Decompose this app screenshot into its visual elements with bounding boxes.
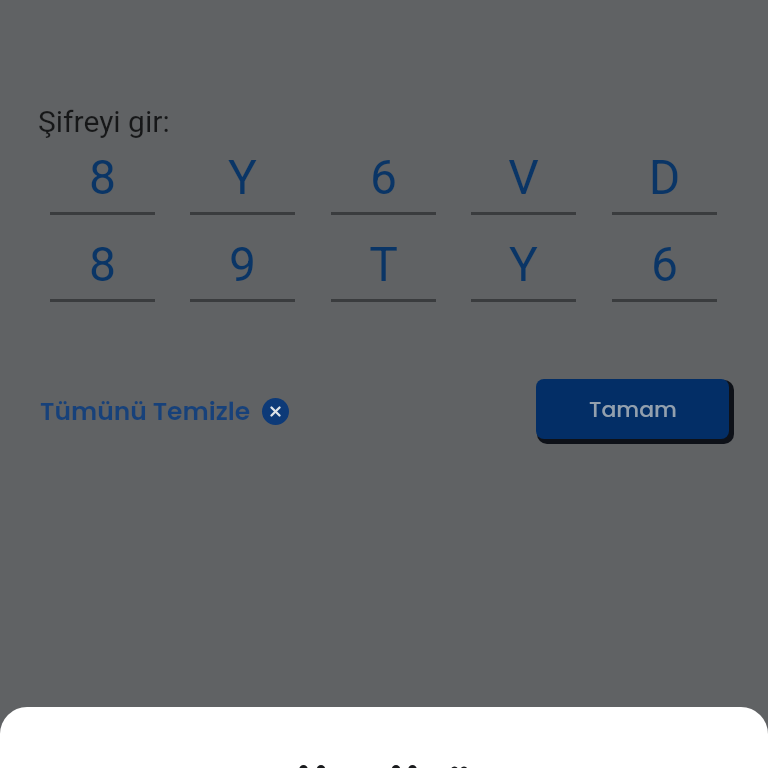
button[interactable]: Character 9 [190, 238, 295, 303]
staticText: Şifreyi gir: [38, 104, 170, 139]
staticText: T [331, 236, 436, 292]
staticText: Y [190, 149, 295, 205]
staticText: Y [471, 236, 576, 292]
button[interactable]: Character 6 [331, 151, 436, 216]
staticText: 9 [190, 236, 295, 292]
button[interactable]: Ödeme Türünü Seçiniz [0, 707, 768, 768]
button[interactable]: Tamam [536, 379, 729, 439]
button[interactable]: Character V [471, 151, 576, 216]
button[interactable]: Character 6 [612, 238, 717, 303]
button[interactable]: Character 8 [50, 151, 155, 216]
button[interactable]: Character Y [190, 151, 295, 216]
button[interactable]: Character Y [471, 238, 576, 303]
staticText: 8 [50, 236, 155, 292]
button[interactable]: Character 8 [50, 238, 155, 303]
staticText: D [612, 149, 717, 205]
button[interactable]: Character T [331, 238, 436, 303]
staticText: Tamam [589, 394, 677, 425]
staticText: Tümünü Temizle [40, 394, 251, 429]
button[interactable]: Character D [612, 151, 717, 216]
staticText: 6 [331, 149, 436, 205]
staticText: 6 [612, 236, 717, 292]
other: Ödeme Türünü Seçiniz [0, 758, 768, 768]
other: Clear all [262, 398, 289, 425]
staticText: V [471, 149, 576, 205]
staticText: 8 [50, 149, 155, 205]
button[interactable]: Tümünü Temizle [31, 389, 298, 434]
